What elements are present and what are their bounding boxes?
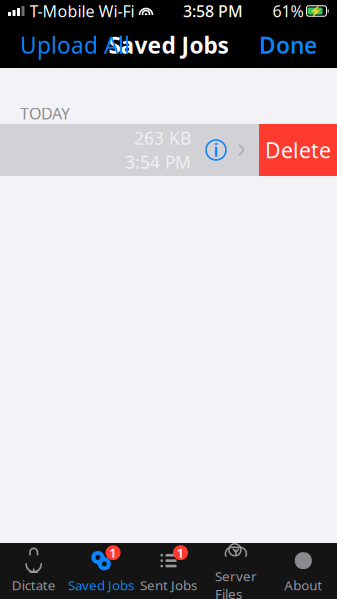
staticText: 61% [272,0,303,22]
staticText: 3:54 PM [125,150,191,173]
staticText: Saved Jobs [68,576,134,594]
staticText: 263 KB [134,126,191,149]
staticText: Saved Jobs [108,30,228,60]
staticText: i [213,138,218,161]
staticText: ⚡ [308,5,321,17]
button[interactable]: 1 [67,547,135,595]
button[interactable]: Dictate [0,547,67,595]
staticText: Upload All [20,30,130,60]
staticText: T-Mobile Wi-Fi [29,0,134,22]
staticText: Sent Jobs [140,576,197,594]
button[interactable]: Delete [259,124,337,176]
staticText: 1 [109,544,117,561]
staticText: 3:58 PM [183,0,243,22]
staticText: Done [259,30,317,60]
button[interactable]: Upload All [12,22,138,68]
button[interactable]: About [270,547,337,595]
staticText: 1 [176,544,184,561]
button[interactable]: 1 [135,547,202,595]
staticText: Dictate [12,576,56,594]
button[interactable]: Done [251,22,325,68]
staticText: TODAY [20,103,70,124]
button[interactable]: Server Files [202,547,270,595]
staticText: About [284,576,322,594]
button[interactable]: 263 KB [0,124,337,176]
staticText: Server Files [215,567,257,599]
staticText: Delete [265,136,331,164]
